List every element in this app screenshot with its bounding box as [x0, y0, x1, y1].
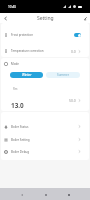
staticText: 13.0: [11, 101, 24, 110]
staticText: Temperature correction: [11, 49, 44, 53]
button[interactable]: Frost protection: [0, 27, 90, 43]
button[interactable]: Edit: [81, 13, 90, 23]
staticText: Winter: [22, 73, 32, 77]
staticText: Mode: [11, 62, 19, 66]
staticText: 0.0: [71, 49, 76, 54]
button[interactable]: 50.0: [69, 96, 90, 104]
button[interactable]: Back: [0, 13, 10, 23]
staticText: Setting: [37, 15, 54, 22]
staticText: Summer: [57, 73, 70, 77]
button[interactable]: Frost protection toggle: [74, 33, 81, 37]
staticText: Boiler Debug: [11, 150, 30, 154]
button[interactable]: Home: [40, 189, 51, 200]
button[interactable]: Boiler Setting: [0, 133, 90, 146]
button[interactable]: Winter: [10, 72, 43, 78]
staticText: Boiler Status: [11, 125, 29, 129]
button[interactable]: Summer: [46, 72, 80, 78]
button[interactable]: Boiler Status: [0, 120, 90, 133]
staticText: Boiler Setting: [11, 138, 30, 142]
button[interactable]: Boiler Debug: [0, 145, 90, 158]
button[interactable]: Temperature correction: [0, 43, 90, 59]
button[interactable]: 13.0: [0, 95, 90, 115]
staticText: 50.0: [69, 98, 76, 103]
staticText: 10:45: [8, 5, 17, 9]
staticText: Rm: [13, 87, 18, 91]
button[interactable]: Recent apps: [63, 189, 74, 200]
button[interactable]: Back: [16, 189, 27, 200]
staticText: Frost protection: [11, 33, 33, 37]
